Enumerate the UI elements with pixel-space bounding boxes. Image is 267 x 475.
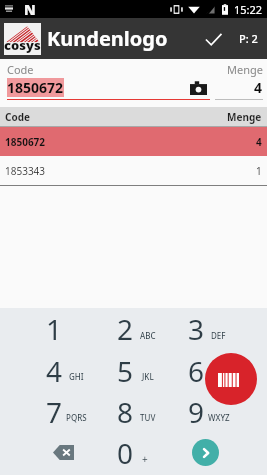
- button[interactable]: Scan with camera: [183, 77, 213, 99]
- staticText: Code: [5, 110, 30, 124]
- button[interactable]: Menge: [215, 59, 263, 107]
- button[interactable]: 0: [90, 432, 161, 473]
- button[interactable]: 6: [161, 350, 232, 391]
- staticText: DEF: [211, 330, 226, 341]
- staticText: Menge: [227, 62, 263, 77]
- button[interactable]: 7: [18, 391, 90, 432]
- button[interactable]: Confirm: [194, 20, 232, 58]
- button[interactable]: Scan barcode: [205, 353, 257, 405]
- staticText: 1853343: [5, 164, 46, 178]
- staticText: 9: [188, 393, 205, 431]
- button[interactable]: 1850672: [0, 127, 267, 156]
- staticText: 1: [256, 164, 262, 178]
- button[interactable]: 3: [161, 308, 232, 350]
- staticText: 5: [117, 352, 134, 390]
- staticText: TUV: [140, 412, 156, 423]
- staticText: 8: [117, 393, 134, 431]
- staticText: 4: [256, 135, 262, 149]
- staticText: 1850672: [7, 78, 64, 97]
- staticText: Code: [7, 62, 34, 77]
- button[interactable]: 4: [18, 350, 90, 391]
- staticText: 3: [188, 310, 205, 348]
- staticText: 4: [254, 78, 263, 97]
- staticText: 2: [117, 310, 134, 348]
- staticText: Menge: [227, 110, 262, 124]
- button[interactable]: Code: [7, 59, 210, 107]
- staticText: 7: [46, 393, 63, 431]
- staticText: 15:22: [234, 2, 263, 17]
- staticText: JKL: [142, 371, 154, 382]
- staticText: 6: [188, 352, 205, 390]
- button[interactable]: 5: [90, 350, 161, 391]
- staticText: 4: [46, 352, 63, 390]
- staticText: WXYZ: [208, 412, 230, 423]
- staticText: +: [142, 452, 148, 466]
- button[interactable]: 9: [161, 391, 232, 432]
- staticText: cosys: [4, 36, 41, 54]
- staticText: 0: [117, 434, 134, 472]
- button[interactable]: 8: [90, 391, 161, 432]
- button[interactable]: Backspace: [18, 432, 90, 473]
- staticText: 1850672: [5, 135, 46, 149]
- staticText: N: [24, 0, 36, 18]
- staticText: ABC: [140, 330, 156, 341]
- button[interactable]: 2: [90, 308, 161, 350]
- staticText: MNO: [209, 371, 229, 382]
- staticText: PQRS: [66, 412, 87, 423]
- button[interactable]: 1853343: [0, 156, 267, 185]
- button[interactable]: Enter: [192, 439, 219, 466]
- staticText: P: 2: [239, 31, 258, 46]
- button[interactable]: P: 2: [232, 21, 265, 56]
- staticText: Kundenlogo: [47, 25, 168, 52]
- button[interactable]: 1: [18, 308, 90, 350]
- staticText: GHI: [69, 371, 84, 382]
- staticText: 1: [46, 310, 63, 348]
